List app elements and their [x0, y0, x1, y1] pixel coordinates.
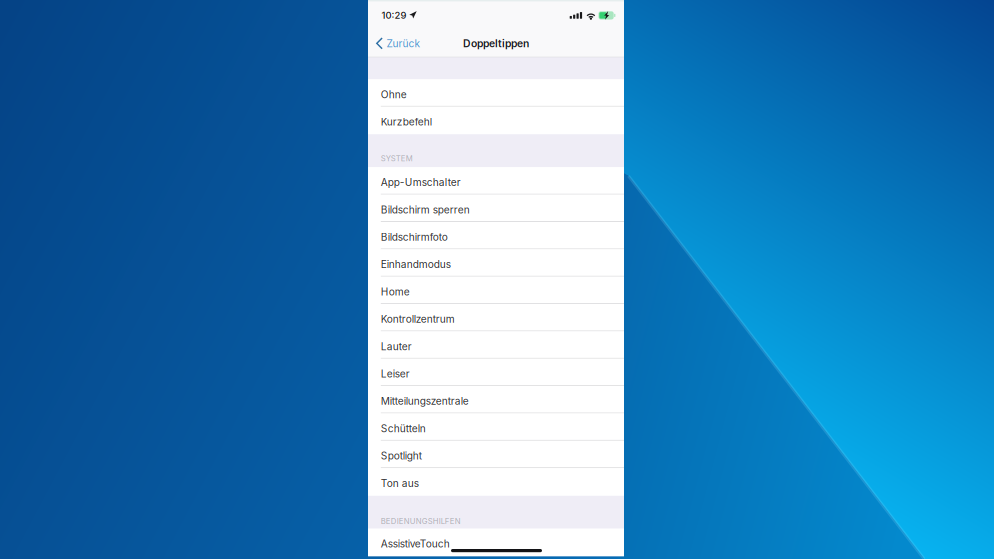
staticText: Lauter: [381, 340, 412, 353]
button[interactable]: AssistiveTouch: [368, 529, 624, 556]
staticText: Spotlight: [381, 450, 422, 462]
button[interactable]: Spotlight: [368, 441, 624, 468]
staticText: Doppeltippen: [463, 37, 529, 50]
staticText: Einhandmodus: [381, 258, 451, 271]
staticText: Ton aus: [381, 477, 419, 489]
staticText: Bildschirmfoto: [381, 231, 448, 243]
button[interactable]: Bildschirm sperren: [368, 195, 624, 222]
staticText: Mitteilungszentrale: [381, 395, 469, 407]
button[interactable]: Einhandmodus: [368, 249, 624, 277]
button[interactable]: App-Umschalter: [368, 167, 624, 195]
button[interactable]: Schütteln: [368, 413, 624, 441]
staticText: App-Umschalter: [381, 176, 461, 188]
staticText: Bildschirm sperren: [381, 204, 470, 216]
button[interactable]: Lauter: [368, 331, 624, 359]
staticText: Kontrollzentrum: [381, 313, 455, 325]
button[interactable]: Leiser: [368, 359, 624, 386]
staticText: Home: [381, 286, 410, 298]
button[interactable]: Kontrollzentrum: [368, 304, 624, 331]
button[interactable]: Ohne: [368, 79, 624, 107]
staticText: AssistiveTouch: [381, 538, 450, 550]
staticText: Schütteln: [381, 422, 426, 435]
button[interactable]: Mitteilungszentrale: [368, 386, 624, 413]
button[interactable]: Ton aus: [368, 468, 624, 496]
button[interactable]: Zurück: [368, 32, 429, 55]
staticText: 10:29: [381, 10, 406, 21]
button[interactable]: Home: [368, 277, 624, 304]
staticText: Leiser: [381, 368, 410, 380]
staticText: Kurzbefehl: [381, 116, 432, 128]
button[interactable]: Bildschirmfoto: [368, 222, 624, 249]
staticText: Ohne: [381, 88, 407, 101]
staticText: SYSTEM: [381, 154, 413, 163]
staticText: Zurück: [387, 37, 421, 50]
button[interactable]: Kurzbefehl: [368, 107, 624, 134]
staticText: BEDIENUNGSHILFEN: [381, 517, 461, 526]
